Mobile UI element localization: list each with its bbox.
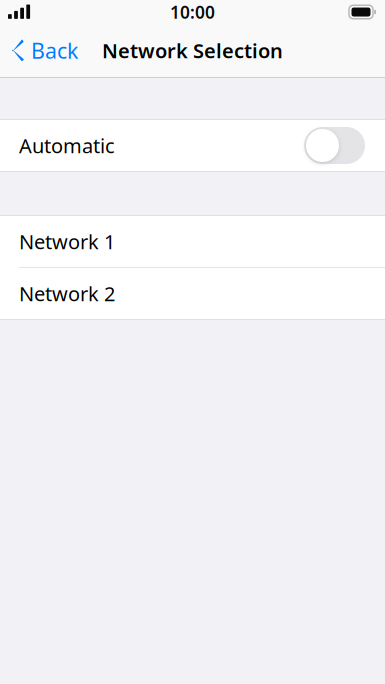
button[interactable]: Network 2 xyxy=(0,268,385,319)
staticText: Network Selection xyxy=(102,37,283,64)
staticText: Automatic xyxy=(19,132,115,159)
button[interactable]: Network 1 xyxy=(0,216,385,267)
staticText: Network 2 xyxy=(19,280,115,307)
staticText: Back xyxy=(31,36,78,65)
button[interactable]: Automatic xyxy=(0,120,385,171)
staticText: 10:00 xyxy=(170,0,215,23)
button[interactable]: Back xyxy=(0,28,86,73)
staticText: Network 1 xyxy=(19,228,115,255)
